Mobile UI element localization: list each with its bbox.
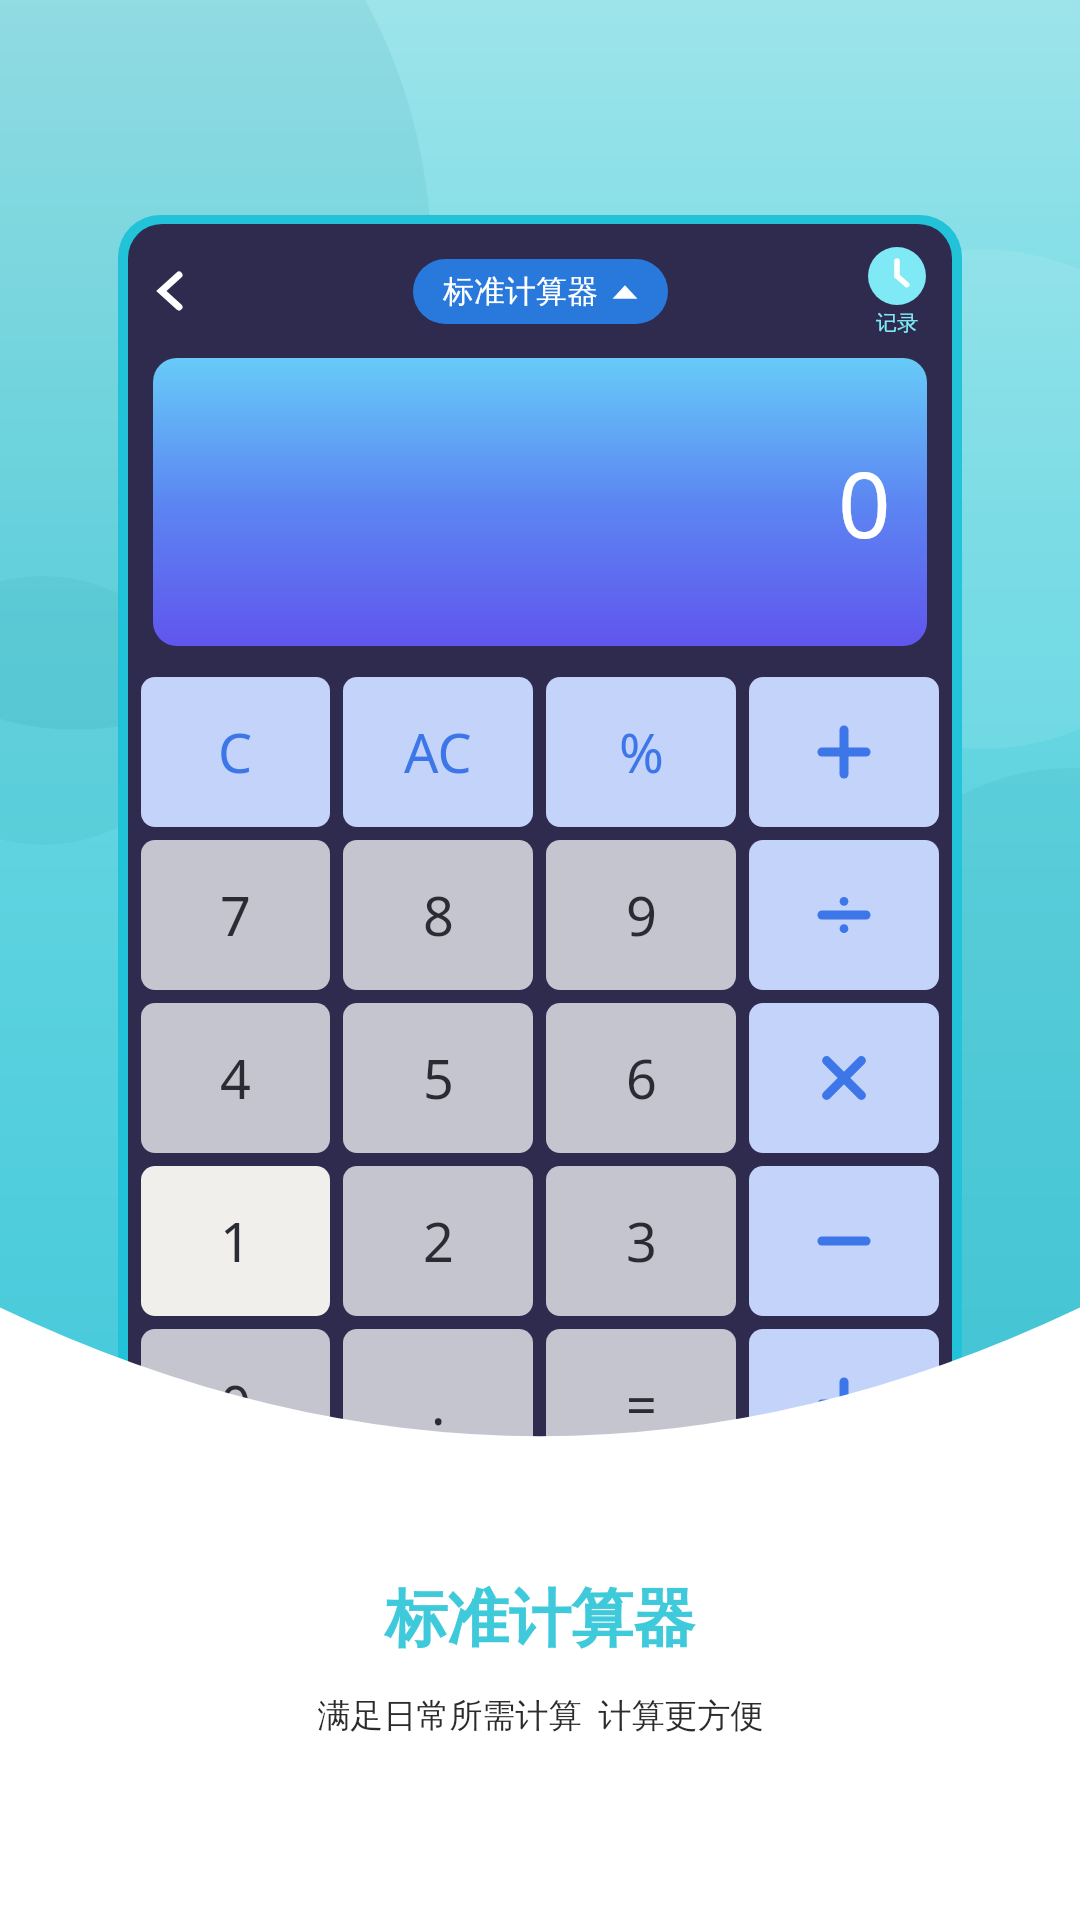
button[interactable]: 8	[343, 840, 533, 990]
staticText: 标准计算器	[443, 272, 598, 311]
button[interactable]: 9	[546, 840, 736, 990]
staticText: 1	[220, 1204, 251, 1278]
staticText: 0	[838, 440, 891, 565]
button[interactable]: %	[546, 677, 736, 827]
button[interactable]	[749, 1329, 939, 1479]
button[interactable]: 4	[141, 1003, 330, 1153]
staticText: 4	[220, 1041, 251, 1115]
staticText: C	[218, 715, 253, 789]
button[interactable]: 2	[343, 1166, 533, 1316]
staticText: 8	[423, 878, 454, 952]
button[interactable]: C	[141, 677, 330, 827]
staticText: 记录	[876, 310, 918, 336]
button[interactable]: 3	[546, 1166, 736, 1316]
staticText: 满足日常所需计算 计算更方便	[317, 1692, 764, 1737]
button[interactable]: AC	[343, 677, 533, 827]
staticText: 标准计算器	[385, 1580, 695, 1658]
button[interactable]	[749, 840, 939, 990]
staticText: .	[431, 1367, 446, 1441]
button[interactable]: 记录	[864, 243, 930, 340]
button[interactable]: 5	[343, 1003, 533, 1153]
staticText: %	[619, 715, 664, 789]
button[interactable]	[749, 677, 939, 827]
button[interactable]: =	[546, 1329, 736, 1479]
staticText: 7	[220, 878, 251, 952]
button[interactable]	[749, 1166, 939, 1316]
button[interactable]: 6	[546, 1003, 736, 1153]
button[interactable]: 0	[141, 1329, 330, 1479]
staticText: 5	[423, 1041, 454, 1115]
staticText: 0	[220, 1367, 251, 1441]
button[interactable]: 返回	[134, 254, 208, 328]
button[interactable]: 1	[141, 1166, 330, 1316]
button[interactable]: 0	[153, 358, 927, 646]
staticText: 9	[626, 878, 657, 952]
staticText: AC	[404, 715, 472, 789]
button[interactable]	[749, 1003, 939, 1153]
staticText: 3	[626, 1204, 657, 1278]
button[interactable]: .	[343, 1329, 533, 1479]
staticText: 6	[626, 1041, 657, 1115]
button[interactable]: 标准计算器	[413, 259, 668, 324]
staticText: 2	[423, 1204, 454, 1278]
staticText: =	[626, 1367, 657, 1441]
button[interactable]: 7	[141, 840, 330, 990]
other: 记录	[868, 247, 926, 305]
